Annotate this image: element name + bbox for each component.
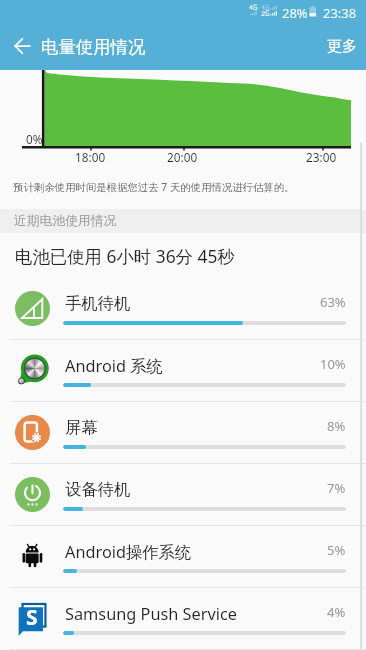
staticText: 屏幕 bbox=[65, 417, 98, 438]
staticText: 7% bbox=[327, 479, 346, 497]
staticText: 设备待机 bbox=[65, 479, 131, 500]
staticText: 更多 bbox=[327, 37, 357, 56]
staticText: 28% bbox=[282, 4, 308, 22]
staticText: 63% bbox=[320, 293, 346, 311]
staticText: 0% bbox=[26, 131, 43, 147]
button[interactable]: 屏幕 bbox=[0, 402, 366, 464]
staticText: 近期电池使用情况 bbox=[14, 213, 117, 229]
staticText: 预计剩余使用时间是根据您过去 7 天的使用情况进行估算的。 bbox=[13, 180, 295, 194]
staticText: 手机待机 bbox=[65, 293, 131, 314]
button[interactable]: 更多 bbox=[315, 25, 366, 68]
staticText: 18:00 bbox=[75, 149, 106, 165]
staticText: 5% bbox=[327, 541, 346, 559]
button[interactable]: Android 系统 bbox=[0, 340, 366, 402]
staticText: 电量使用情况 bbox=[41, 36, 146, 58]
staticText: 电池已使用 6小时 36分 45秒 bbox=[15, 244, 235, 268]
button[interactable]: 电池已使用 6小时 36分 45秒 bbox=[0, 233, 366, 278]
staticText: Android操作系统 bbox=[65, 541, 192, 563]
staticText: 8% bbox=[327, 417, 346, 435]
staticText: 23:38 bbox=[323, 4, 357, 22]
button[interactable]: Back bbox=[0, 24, 44, 68]
button[interactable]: Android操作系统 bbox=[0, 526, 366, 588]
staticText: 20:00 bbox=[167, 149, 198, 165]
button[interactable]: 设备待机 bbox=[0, 464, 366, 526]
staticText: 23:00 bbox=[306, 149, 337, 165]
button[interactable]: S bbox=[0, 588, 366, 650]
staticText: 4% bbox=[327, 603, 346, 621]
staticText: Android 系统 bbox=[65, 355, 163, 377]
staticText: S bbox=[26, 603, 38, 632]
button[interactable]: 手机待机 bbox=[0, 278, 366, 340]
staticText: Samsung Push Service bbox=[65, 603, 237, 625]
staticText: 10% bbox=[320, 355, 346, 373]
